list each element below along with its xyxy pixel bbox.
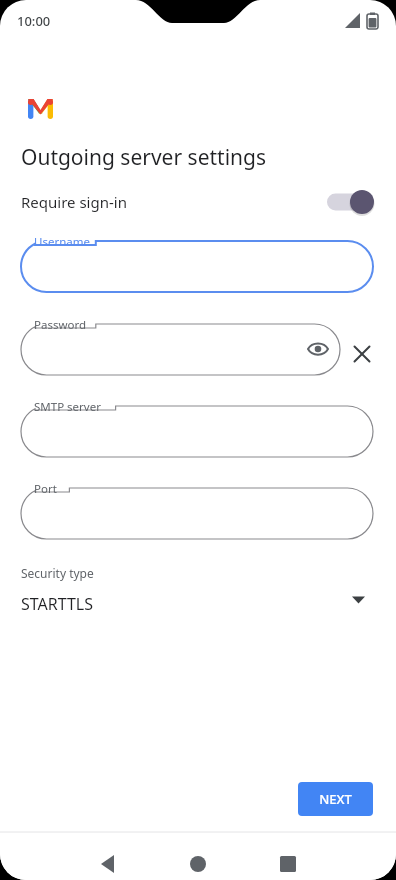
staticText: Security type xyxy=(21,565,94,581)
button[interactable]: Require sign-in xyxy=(0,183,396,221)
button[interactable]: NEXT xyxy=(298,782,373,816)
staticText: STARTTLS xyxy=(21,593,94,615)
button[interactable]: SMTP server xyxy=(17,396,377,467)
button[interactable]: Security type xyxy=(0,560,396,622)
button[interactable]: Show password xyxy=(304,335,332,363)
button[interactable]: Recent apps xyxy=(266,842,310,880)
button[interactable]: Back xyxy=(86,842,130,880)
staticText: Require sign-in xyxy=(21,192,127,212)
button[interactable]: Clear xyxy=(348,340,376,368)
button[interactable]: Username xyxy=(17,231,377,302)
staticText: NEXT xyxy=(319,790,352,808)
staticText: 10:00 xyxy=(17,12,51,30)
staticText: Username xyxy=(34,234,90,250)
staticText: Password xyxy=(34,317,87,333)
staticText: Port xyxy=(34,481,57,497)
button[interactable]: Home xyxy=(176,842,220,880)
staticText: SMTP server xyxy=(34,399,101,415)
button[interactable]: Password xyxy=(17,314,344,385)
staticText: Outgoing server settings xyxy=(21,143,267,172)
button[interactable]: Port xyxy=(17,478,377,549)
